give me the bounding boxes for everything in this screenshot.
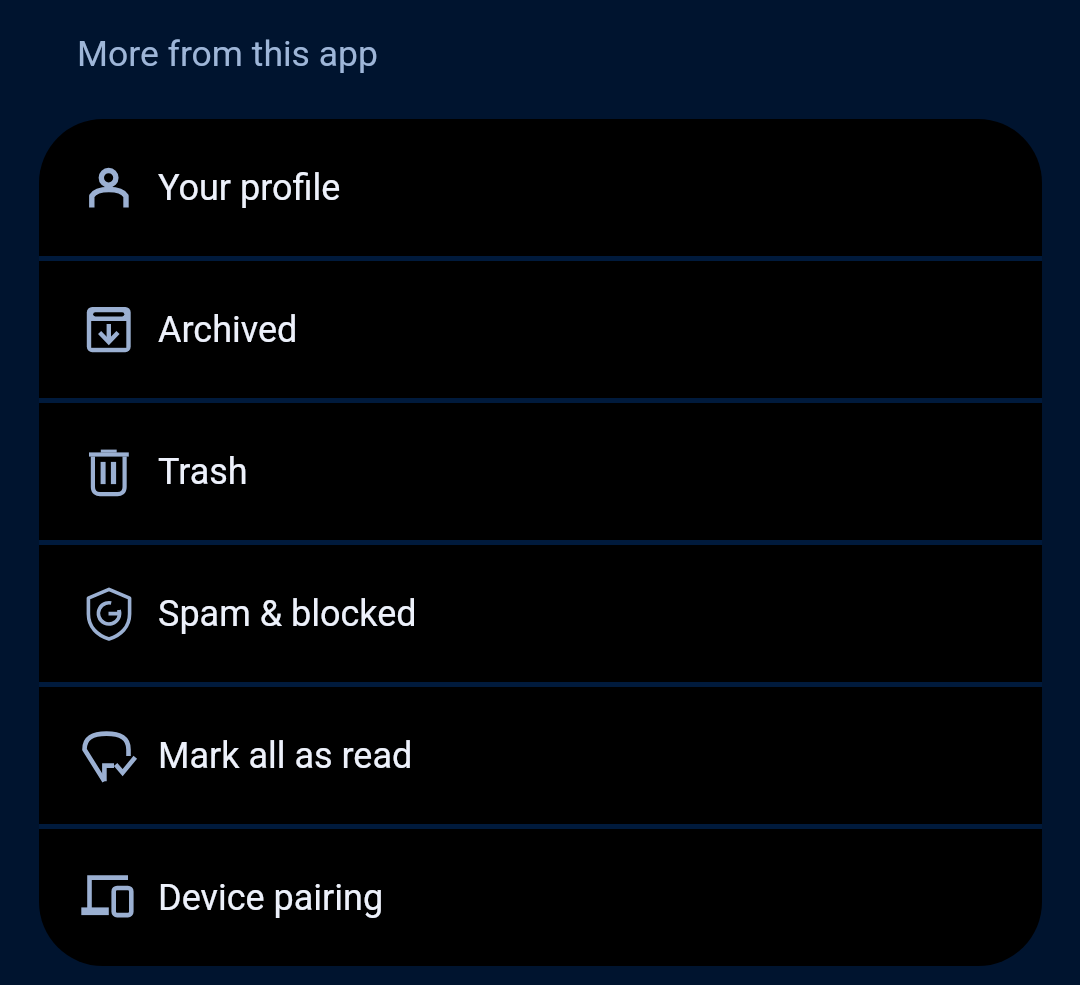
- staticText: Your profile: [158, 167, 341, 209]
- button[interactable]: Archived: [39, 261, 1042, 398]
- button[interactable]: Mark all as read: [39, 687, 1042, 824]
- button[interactable]: Your profile: [39, 119, 1042, 256]
- staticText: Device pairing: [158, 877, 384, 919]
- button[interactable]: Trash: [39, 403, 1042, 540]
- button[interactable]: Device pairing: [39, 829, 1042, 966]
- button[interactable]: Spam & blocked: [39, 545, 1042, 682]
- staticText: Spam & blocked: [158, 593, 417, 635]
- staticText: Mark all as read: [158, 735, 413, 777]
- staticText: Archived: [158, 309, 298, 351]
- staticText: More from this app: [77, 33, 378, 75]
- staticText: Trash: [158, 451, 248, 493]
